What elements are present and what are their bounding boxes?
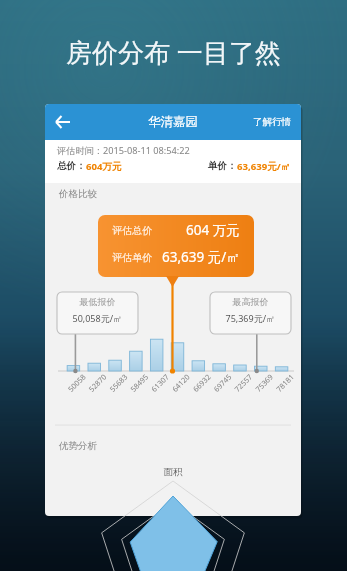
button[interactable] [243,106,298,138]
button[interactable]: Back [47,106,81,138]
